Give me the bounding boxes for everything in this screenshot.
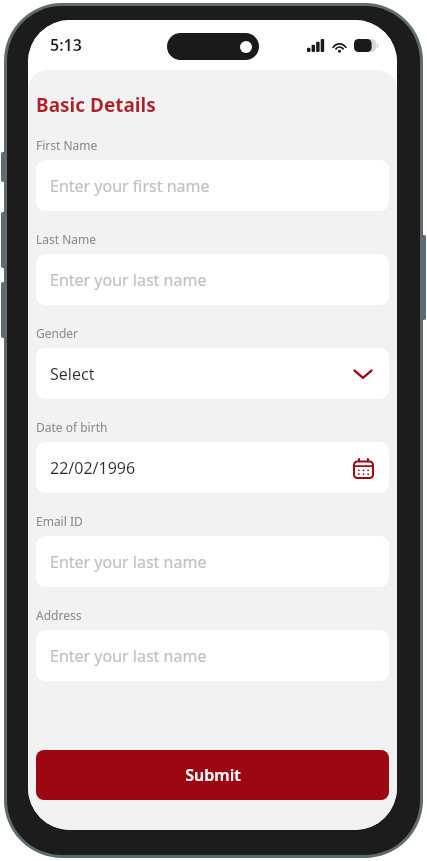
- button[interactable]: Submit: [36, 750, 389, 800]
- staticText: Last Name: [36, 231, 97, 247]
- button[interactable]: Enter your first name: [36, 160, 389, 211]
- button[interactable]: Pick date: [351, 456, 375, 480]
- staticText: 5:13: [50, 34, 82, 56]
- staticText: Basic Details: [36, 92, 156, 118]
- button[interactable]: Enter your last name: [36, 254, 389, 305]
- staticText: Date of birth: [36, 419, 108, 435]
- staticText: Select: [50, 363, 351, 385]
- staticText: Enter your last name: [50, 551, 207, 573]
- staticText: First Name: [36, 137, 98, 153]
- staticText: Email ID: [36, 513, 83, 529]
- staticText: Enter your first name: [50, 175, 210, 197]
- staticText: Enter your last name: [50, 645, 207, 667]
- staticText: Enter your last name: [50, 269, 207, 291]
- staticText: Gender: [36, 325, 79, 341]
- button[interactable]: Select: [36, 348, 389, 399]
- staticText: Submit: [185, 764, 241, 786]
- button[interactable]: Enter your last name: [36, 630, 389, 681]
- button[interactable]: Open gender dropdown: [351, 362, 375, 386]
- button[interactable]: 22/02/1996: [36, 442, 389, 493]
- staticText: Address: [36, 607, 82, 623]
- staticText: 22/02/1996: [50, 457, 351, 479]
- button[interactable]: Enter your last name: [36, 536, 389, 587]
